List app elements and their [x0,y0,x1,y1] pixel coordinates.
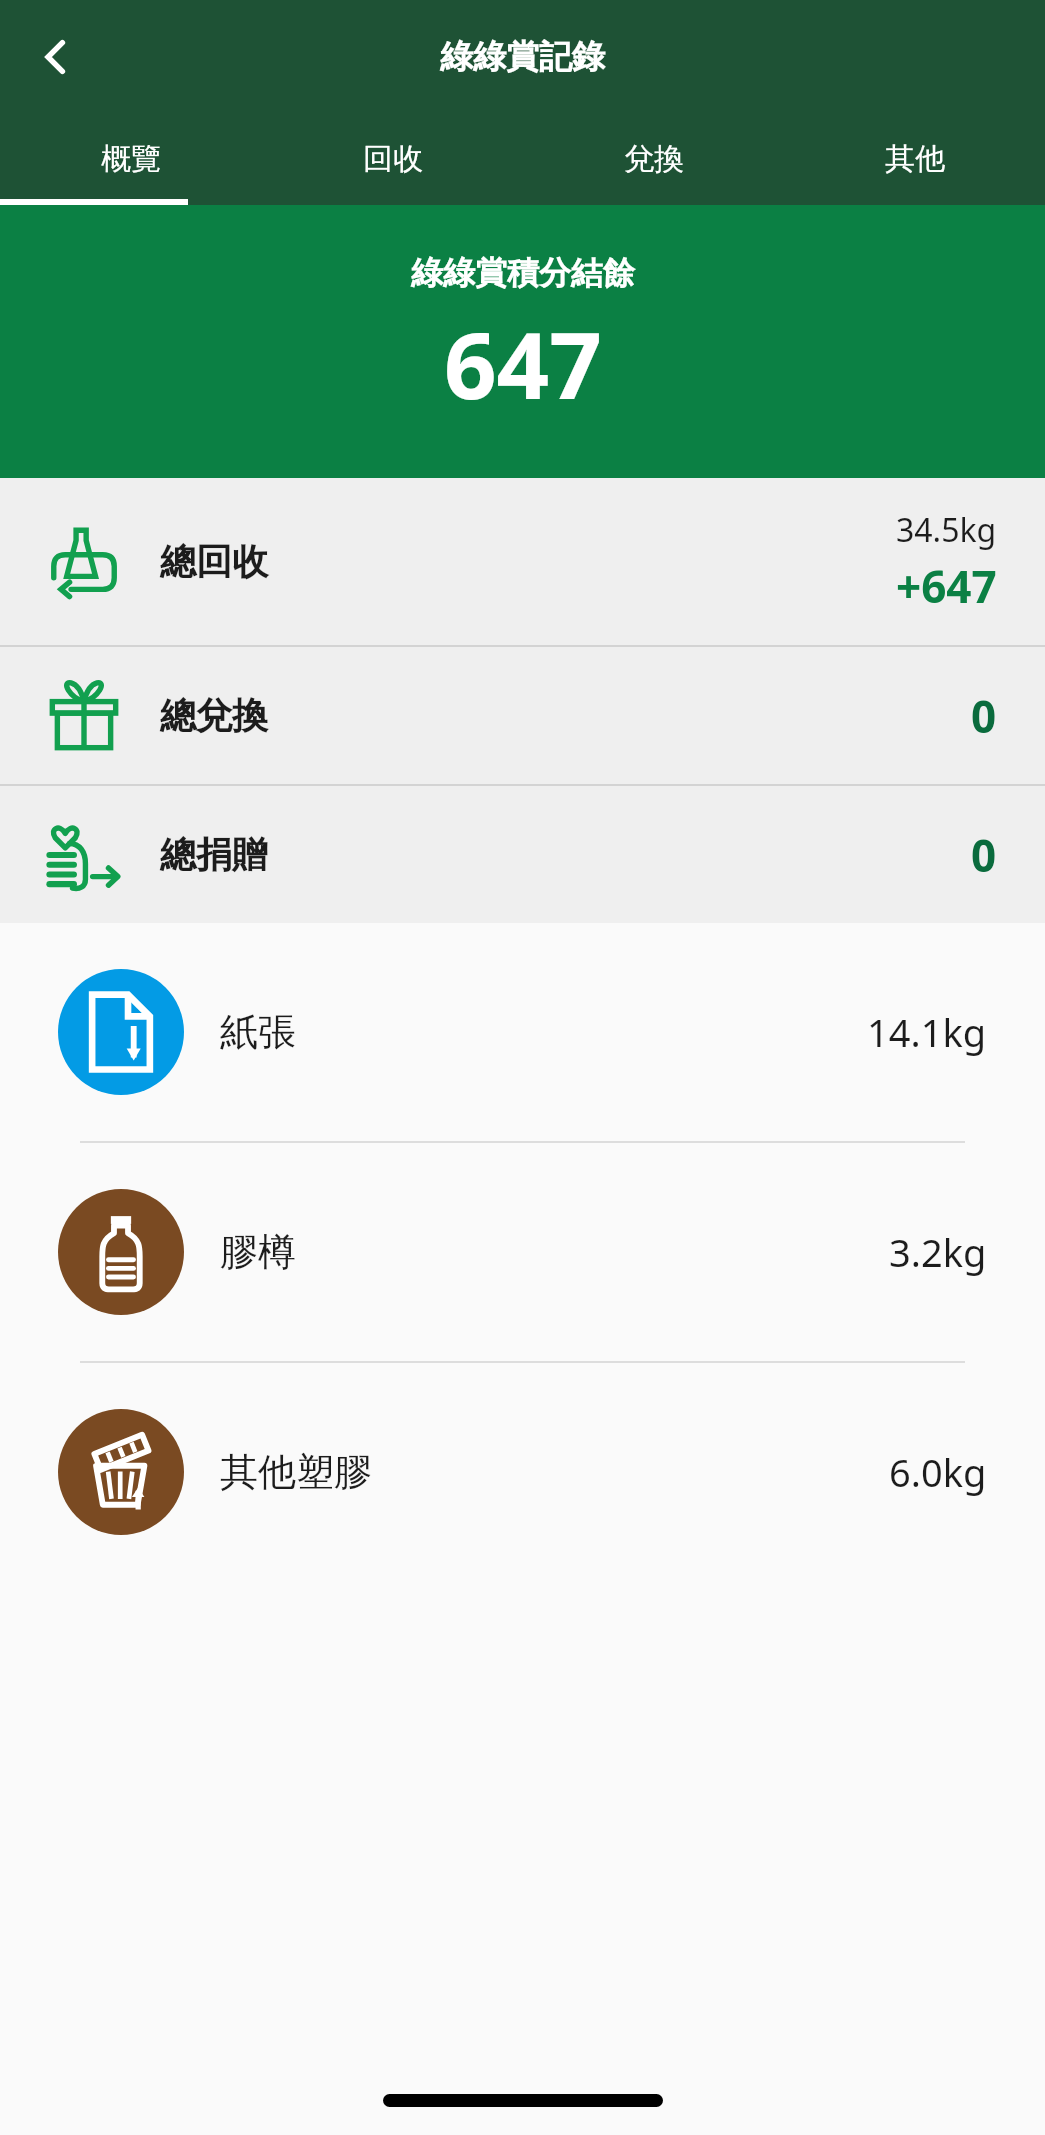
button[interactable]: 總捐贈 [0,786,1045,923]
staticText: 14.1kg [867,1006,987,1058]
staticText: 總兌換 [160,693,268,738]
staticText: 回收 [363,140,423,178]
button[interactable]: 其他塑膠 [0,1363,1045,1581]
staticText: 總捐贈 [160,832,268,877]
staticText: 膠樽 [220,1228,296,1276]
staticText: +647 [896,556,997,616]
staticText: 其他 [885,140,945,178]
staticText: 綠綠賞積分結餘 [411,253,635,293]
staticText: 兌換 [624,140,684,178]
button[interactable]: 總兌換 [0,647,1045,784]
staticText: 總回收 [160,539,268,584]
button[interactable]: 概覽 [0,113,262,205]
button[interactable]: 兌換 [523,113,784,205]
button[interactable]: 總回收 [0,478,1045,645]
staticText: 紙張 [220,1008,296,1056]
staticText: 概覽 [101,140,161,178]
staticText: 34.5kg [896,508,997,552]
staticText: 6.0kg [889,1446,987,1498]
button[interactable]: 膠樽 [0,1143,1045,1361]
staticText: 3.2kg [889,1226,987,1278]
button[interactable]: Back [20,21,92,93]
staticText: 0 [971,686,997,746]
staticText: 647 [444,301,602,426]
button[interactable]: 紙張 [0,923,1045,1141]
button[interactable]: 回收 [262,113,523,205]
staticText: 綠綠賞記錄 [440,36,605,78]
staticText: 其他塑膠 [220,1448,372,1496]
button[interactable]: 其他 [784,113,1045,205]
staticText: 0 [971,825,997,885]
